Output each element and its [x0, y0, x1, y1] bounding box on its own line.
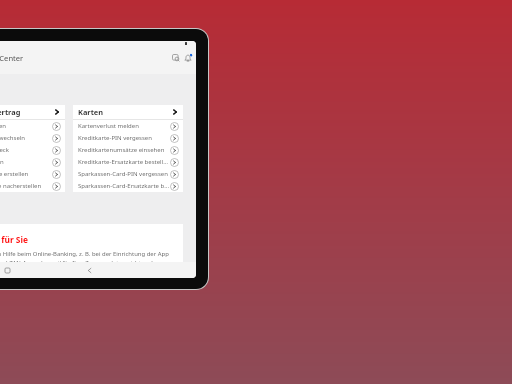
- button[interactable]: Back: [71, 262, 107, 278]
- button[interactable]: SicherheitsCheck: [0, 144, 65, 156]
- staticText: Daueraufträge erstellen: [0, 170, 52, 178]
- button[interactable]: Kontomodell wechseln: [0, 132, 65, 144]
- button[interactable]: Kartenverlust melden: [73, 120, 183, 132]
- staticText: Kreditkarte-Ersatzkarte bestellen: [78, 158, 170, 166]
- button[interactable]: Konto kündigen: [0, 120, 65, 132]
- staticText: Karten: [78, 107, 172, 117]
- staticText: Konto & Vertrag: [0, 107, 54, 117]
- staticText: Sparkassen-Card-Ersatzkarte b...: [78, 182, 170, 190]
- button[interactable]: Kreditkartenumsätze einsehen: [73, 144, 183, 156]
- staticText: Kartenverlust melden: [78, 122, 170, 130]
- button[interactable]: Kontoauszüge nacherstellen: [0, 180, 65, 192]
- staticText: Konto kündigen: [0, 122, 52, 130]
- staticText: Kontoauszüge nacherstellen: [0, 182, 52, 190]
- staticText: Sie brauchen Hilfe beim Online-Banking, …: [0, 250, 174, 262]
- staticText: Wir sind für Sie: [0, 234, 28, 245]
- staticText: Kreditkartenumsätze einsehen: [78, 146, 170, 154]
- staticText: SicherheitsCheck: [0, 146, 52, 154]
- button[interactable]: Konto eröffnen: [0, 156, 65, 168]
- button[interactable]: Feedback: [170, 52, 181, 63]
- staticText: Sparkassen-Card-PIN vergessen: [78, 170, 170, 178]
- staticText: Konto eröffnen: [0, 158, 52, 166]
- button[interactable]: Recents: [0, 262, 25, 278]
- button[interactable]: Sparkassen-Card-Ersatzkarte b...: [73, 180, 183, 192]
- button[interactable]: Notifications: [182, 52, 193, 63]
- button[interactable]: Kreditkarte-PIN vergessen: [73, 132, 183, 144]
- staticText: Service Center: [0, 53, 24, 63]
- button[interactable]: Daueraufträge erstellen: [0, 168, 65, 180]
- button[interactable]: Wir sind für Sie: [0, 224, 183, 262]
- button[interactable]: Kreditkarte-Ersatzkarte bestellen: [73, 156, 183, 168]
- staticText: Kontomodell wechseln: [0, 134, 52, 142]
- staticText: Kreditkarte-PIN vergessen: [78, 134, 170, 142]
- button[interactable]: Karten: [73, 105, 183, 119]
- button[interactable]: Sparkassen-Card-PIN vergessen: [73, 168, 183, 180]
- button[interactable]: Konto & Vertrag: [0, 105, 65, 119]
